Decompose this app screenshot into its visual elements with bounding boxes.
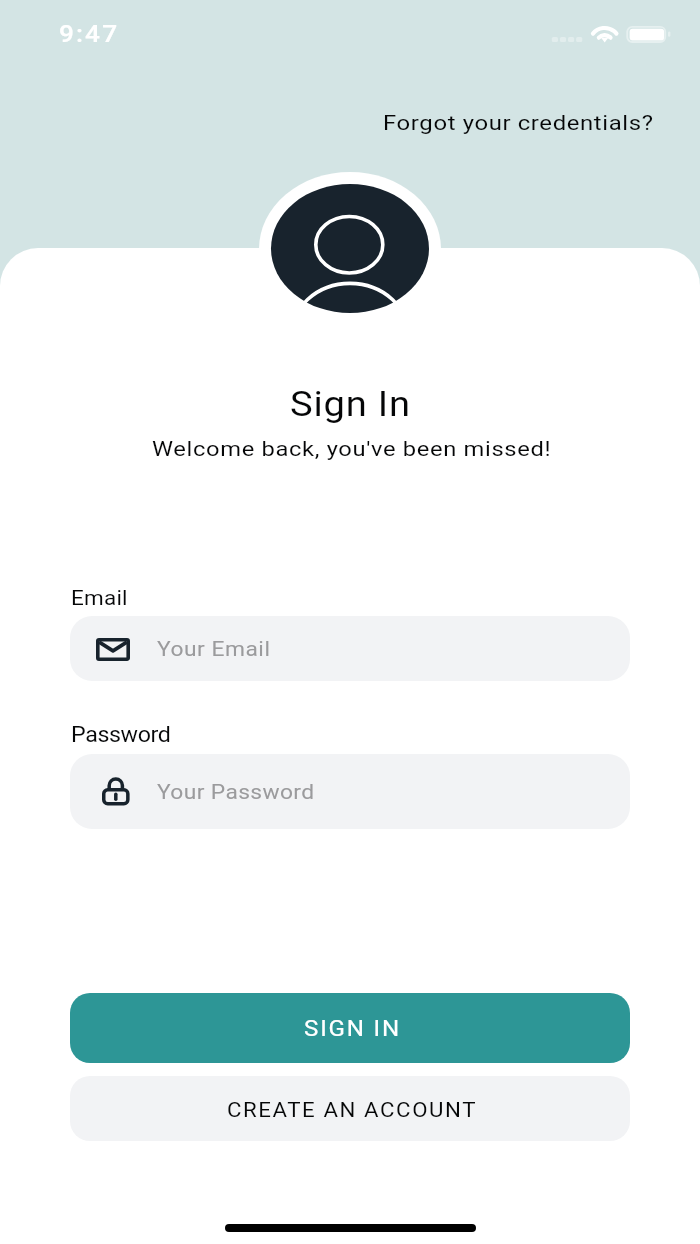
other: Password: [102, 777, 130, 806]
staticText: Password: [71, 722, 171, 747]
staticText: Your Email: [157, 636, 271, 661]
button[interactable]: [70, 1076, 630, 1141]
staticText: Sign In: [290, 383, 411, 424]
staticText: CREATE AN ACCOUNT: [227, 1098, 477, 1123]
staticText: Your Password: [157, 779, 315, 804]
staticText: Forgot your credentials?: [383, 111, 654, 135]
button[interactable]: [70, 754, 630, 829]
staticText: Welcome back, you've been missed!: [152, 437, 552, 461]
button[interactable]: [70, 616, 630, 681]
staticText: Email: [71, 586, 128, 610]
staticText: 9:47: [59, 20, 119, 48]
other: Email: [96, 638, 130, 661]
button[interactable]: [375, 108, 661, 142]
button[interactable]: [70, 993, 630, 1063]
staticText: SIGN IN: [304, 1015, 401, 1041]
